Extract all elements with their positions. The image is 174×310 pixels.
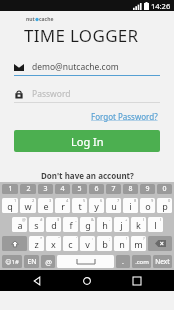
staticText: 4: [66, 198, 69, 203]
staticText: h: [102, 219, 108, 231]
button[interactable]: 1: [2, 184, 18, 194]
button[interactable]: 3: [38, 184, 53, 194]
button[interactable]: e: [38, 198, 53, 213]
button[interactable]: Recents: [124, 270, 150, 291]
button[interactable]: Next: [153, 255, 172, 268]
button[interactable]: Forgot Password?: [89, 109, 160, 124]
button[interactable]: v: [80, 236, 95, 251]
staticText: q: [7, 200, 13, 212]
staticText: 6: [100, 198, 103, 203]
staticText: w: [24, 200, 32, 212]
button[interactable]: b: [97, 236, 112, 251]
staticText: .: [122, 257, 124, 267]
staticText: :: [92, 236, 94, 241]
staticText: x: [51, 238, 56, 250]
staticText: i: [129, 200, 132, 212]
staticText: 8: [134, 198, 137, 203]
other: Email: [14, 64, 24, 71]
button[interactable]: w: [20, 198, 36, 213]
button[interactable]: j: [114, 217, 129, 232]
button[interactable]: s: [29, 217, 44, 232]
staticText: 2: [32, 198, 35, 203]
button[interactable]: t: [72, 198, 87, 213]
staticText: ☺1#: [5, 258, 19, 266]
button[interactable]: 2: [20, 184, 36, 194]
button[interactable]: d: [46, 217, 61, 232]
staticText: e: [43, 200, 49, 212]
staticText: 2: [26, 184, 31, 194]
button[interactable]: m: [131, 236, 146, 251]
button[interactable]: 9: [140, 184, 155, 194]
staticText: ;: [109, 236, 111, 241]
button[interactable]: g: [80, 217, 95, 232]
button[interactable]: @: [41, 255, 55, 268]
staticText: ?: [143, 236, 145, 241]
staticText: c: [68, 238, 73, 250]
button[interactable]: c: [63, 236, 78, 251]
staticText: u: [111, 200, 117, 212]
staticText: 9: [145, 184, 150, 194]
button[interactable]: p: [157, 198, 172, 213]
staticText: d: [51, 219, 57, 231]
button[interactable]: i: [123, 198, 138, 213]
staticText: +: [125, 217, 128, 222]
staticText: Next: [155, 257, 170, 266]
button[interactable]: 5: [72, 184, 87, 194]
button[interactable]: Space: [57, 255, 114, 268]
button[interactable]: ☺1#: [2, 255, 22, 268]
button[interactable]: h: [97, 217, 112, 232]
staticText: -: [109, 217, 111, 222]
staticText: s: [34, 219, 39, 231]
button[interactable]: 7: [106, 184, 121, 194]
staticText: 9: [151, 198, 154, 203]
button[interactable]: Shift: [2, 236, 27, 251]
staticText: z: [34, 238, 39, 250]
button[interactable]: q: [2, 198, 18, 213]
staticText: r: [61, 200, 65, 212]
button[interactable]: EN: [24, 255, 39, 268]
button[interactable]: r: [55, 198, 70, 213]
button[interactable]: 4: [55, 184, 70, 194]
button[interactable]: z: [29, 236, 44, 251]
button[interactable]: 0: [157, 184, 172, 194]
staticText: b: [102, 238, 108, 250]
staticText: j: [120, 219, 123, 231]
staticText: EN: [27, 257, 37, 267]
staticText: Log In: [71, 134, 104, 149]
button[interactable]: .com: [132, 255, 151, 268]
staticText: @: [45, 257, 52, 267]
button[interactable]: n: [114, 236, 129, 251]
button[interactable]: f: [63, 217, 78, 232]
button[interactable]: k: [131, 217, 146, 232]
staticText: 7: [117, 198, 120, 203]
button[interactable]: a: [12, 217, 27, 232]
staticText: m: [134, 238, 143, 250]
button[interactable]: y: [89, 198, 104, 213]
staticText: &: [91, 217, 94, 222]
staticText: g: [85, 219, 91, 231]
staticText: o: [145, 200, 151, 212]
button[interactable]: Home: [74, 270, 100, 291]
staticText: @: [22, 217, 26, 222]
button[interactable]: 6: [89, 184, 104, 194]
staticText: ): [160, 217, 162, 222]
button[interactable]: Backspace: [148, 236, 172, 251]
button[interactable]: x: [46, 236, 61, 251]
staticText: v: [85, 238, 90, 250]
button[interactable]: Back: [24, 270, 50, 291]
staticText: $: [57, 217, 60, 222]
button[interactable]: .: [116, 255, 130, 268]
staticText: t: [78, 200, 82, 212]
staticText: ": [58, 236, 60, 241]
button[interactable]: o: [140, 198, 155, 213]
staticText: 5: [77, 184, 82, 194]
staticText: .com: [135, 258, 149, 266]
staticText: y: [94, 200, 99, 212]
button[interactable]: 8: [123, 184, 138, 194]
button[interactable]: Log In: [14, 130, 160, 152]
button[interactable]: u: [106, 198, 121, 213]
staticText: k: [136, 219, 141, 231]
staticText: 3: [49, 198, 52, 203]
button[interactable]: l: [148, 217, 163, 232]
staticText: 7: [111, 184, 116, 194]
